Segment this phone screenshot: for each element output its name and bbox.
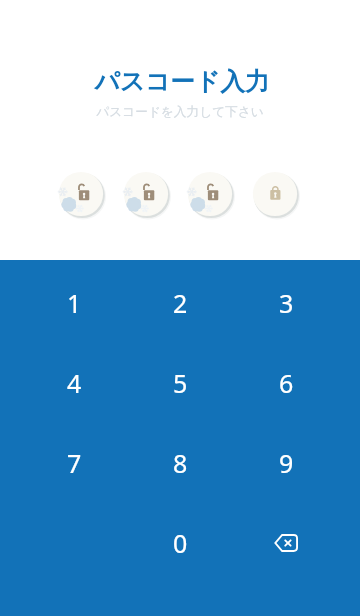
staticText: 3	[279, 286, 294, 320]
staticText: 8	[173, 446, 188, 480]
staticText: 9	[279, 446, 294, 480]
staticText: パスコードを入力して下さい	[0, 104, 360, 120]
button[interactable]: Backspace	[233, 503, 339, 583]
button[interactable]: 9	[233, 423, 339, 503]
button[interactable]: Entered digit	[187, 171, 233, 217]
button[interactable]: 0	[127, 503, 233, 583]
staticText: 5	[173, 366, 188, 400]
staticText: 4	[67, 366, 82, 400]
button[interactable]: Entered digit	[123, 171, 169, 217]
staticText: 2	[173, 286, 188, 320]
button[interactable]: 2	[127, 263, 233, 343]
button[interactable]: 6	[233, 343, 339, 423]
button[interactable]: Entered digit	[58, 171, 104, 217]
button[interactable]: 8	[127, 423, 233, 503]
button[interactable]: 3	[233, 263, 339, 343]
button[interactable]: 5	[127, 343, 233, 423]
button[interactable]: 7	[21, 423, 127, 503]
staticText: 0	[173, 526, 188, 560]
button[interactable]: Empty digit	[252, 171, 298, 217]
staticText: 1	[67, 286, 82, 320]
button[interactable]: 1	[21, 263, 127, 343]
staticText: 7	[67, 446, 82, 480]
staticText: パスコード入力	[2, 66, 360, 97]
button[interactable]: 4	[21, 343, 127, 423]
staticText: 6	[279, 366, 294, 400]
